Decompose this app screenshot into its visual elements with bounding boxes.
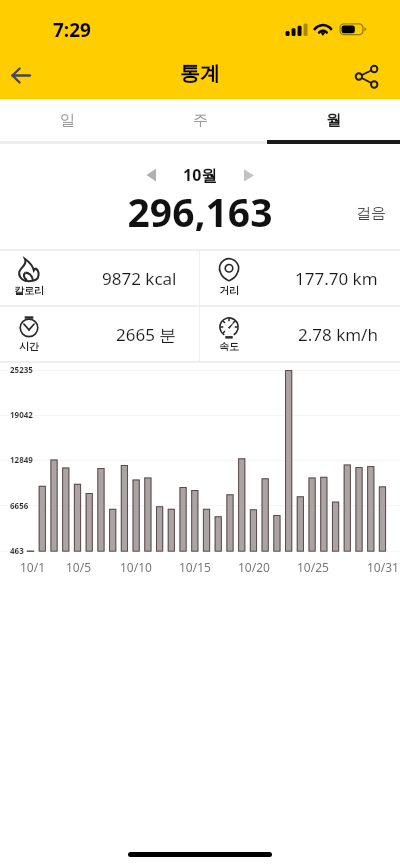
staticText: 2.78 km/h (298, 323, 378, 346)
staticText: 177.70 km (295, 267, 378, 290)
staticText: 10/25 (297, 559, 329, 575)
button[interactable]: 거리 (200, 251, 400, 305)
button[interactable]: 시간 (0, 307, 199, 361)
staticText: 칼로리 (14, 284, 44, 297)
staticText: 6656 (10, 500, 29, 511)
staticText: 주 (193, 111, 208, 130)
staticText: 12849 (10, 454, 33, 465)
button[interactable]: 칼로리 (0, 251, 199, 305)
staticText: 2665 분 (116, 323, 177, 346)
staticText: 통계 (0, 61, 400, 86)
staticText: 19042 (10, 409, 33, 420)
button[interactable]: 속도 (200, 307, 400, 361)
staticText: 10/10 (120, 559, 152, 575)
staticText: 7:29 (53, 17, 91, 43)
staticText: 25235 (10, 364, 33, 375)
staticText: 9872 kcal (102, 267, 177, 290)
staticText: 속도 (219, 340, 239, 353)
staticText: 10/20 (238, 559, 270, 575)
button[interactable]: Share (348, 57, 388, 97)
staticText: 10/1 (20, 559, 46, 575)
staticText: 10/31 (367, 559, 399, 575)
staticText: 월 (326, 111, 341, 130)
staticText: 10월 (183, 164, 218, 186)
staticText: 거리 (219, 284, 239, 297)
button[interactable]: 주 (134, 99, 267, 144)
button[interactable]: 일 (0, 99, 134, 144)
staticText: 일 (60, 111, 75, 130)
staticText: 10/15 (179, 559, 211, 575)
button[interactable]: Next month (235, 160, 263, 188)
staticText: 296,163 (0, 185, 400, 231)
staticText: 463 (10, 545, 24, 556)
button[interactable]: 월 (267, 99, 400, 144)
button[interactable]: Previous month (137, 160, 165, 188)
staticText: 걸음 (356, 204, 386, 223)
staticText: 10/5 (66, 559, 92, 575)
staticText: 시간 (19, 340, 39, 353)
button[interactable]: Back (1, 55, 42, 96)
